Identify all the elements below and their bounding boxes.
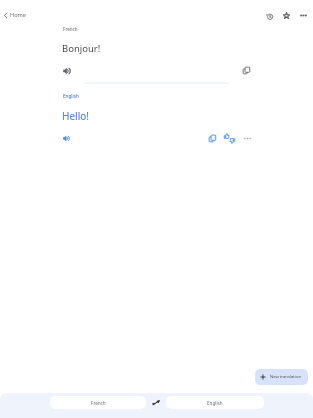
button[interactable]: New translation: [255, 369, 308, 385]
staticText: Home: [10, 11, 26, 19]
button[interactable]: French: [50, 396, 146, 409]
staticText: Hello!: [62, 109, 89, 123]
button[interactable]: Listen: [59, 131, 74, 146]
button[interactable]: Swap languages: [149, 396, 163, 410]
staticText: English: [63, 93, 79, 99]
button[interactable]: Home: [0, 7, 31, 23]
staticText: French: [91, 400, 106, 406]
button[interactable]: Listen: [59, 63, 74, 78]
button[interactable]: Copy: [239, 63, 254, 78]
button[interactable]: Rate translation: [221, 130, 237, 146]
button[interactable]: Favorite: [279, 8, 293, 22]
button[interactable]: More options: [297, 9, 309, 21]
button[interactable]: More options: [241, 132, 253, 144]
button[interactable]: English: [166, 396, 264, 409]
staticText: New translation: [270, 374, 302, 380]
staticText: English: [207, 400, 223, 406]
button[interactable]: Copy: [205, 131, 219, 145]
button[interactable]: History: [262, 9, 276, 23]
staticText: French: [63, 26, 78, 32]
staticText: Bonjour!: [62, 42, 101, 55]
